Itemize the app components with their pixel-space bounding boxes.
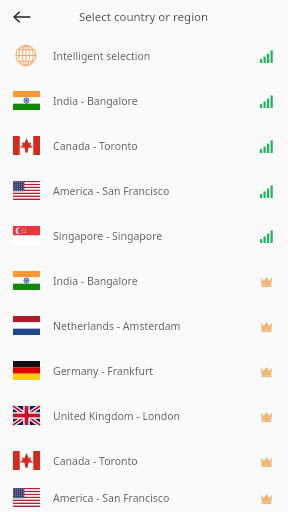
staticText: Canada - Toronto xyxy=(53,454,258,468)
button[interactable]: America - San Francisco xyxy=(0,483,288,512)
button[interactable]: Back xyxy=(4,0,40,33)
button[interactable]: Canada - Toronto xyxy=(0,123,288,168)
staticText: India - Bangalore xyxy=(53,94,258,108)
button[interactable]: India - Bangalore xyxy=(0,258,288,303)
staticText: Netherlands - Amsterdam xyxy=(53,319,258,333)
button[interactable]: Germany - Frankfurt xyxy=(0,348,288,393)
button[interactable]: Intelligent selection xyxy=(0,33,288,78)
staticText: United Kingdom - London xyxy=(53,409,258,423)
staticText: Select country or region xyxy=(79,9,209,25)
staticText: Canada - Toronto xyxy=(53,139,258,153)
staticText: America - San Francisco xyxy=(53,491,258,505)
button[interactable]: Netherlands - Amsterdam xyxy=(0,303,288,348)
staticText: India - Bangalore xyxy=(53,274,258,288)
button[interactable]: Canada - Toronto xyxy=(0,438,288,483)
staticText: Singapore - Singapore xyxy=(53,229,258,243)
button[interactable]: Singapore - Singapore xyxy=(0,213,288,258)
button[interactable]: America - San Francisco xyxy=(0,168,288,213)
button[interactable]: India - Bangalore xyxy=(0,78,288,123)
staticText: Intelligent selection xyxy=(53,49,258,63)
staticText: America - San Francisco xyxy=(53,184,258,198)
staticText: Germany - Frankfurt xyxy=(53,364,258,378)
button[interactable]: United Kingdom - London xyxy=(0,393,288,438)
